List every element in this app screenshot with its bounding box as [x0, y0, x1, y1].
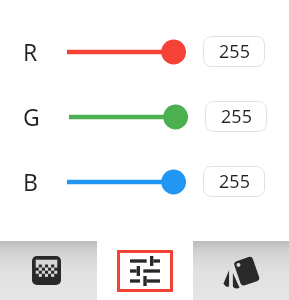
button[interactable]: 255: [203, 166, 265, 197]
button[interactable]: Gradient: [0, 241, 97, 300]
button[interactable]: 255: [203, 36, 265, 67]
staticText: R: [23, 36, 38, 67]
staticText: B: [23, 166, 38, 197]
button[interactable]: Style: [193, 241, 289, 300]
button[interactable]: 255: [205, 101, 267, 132]
staticText: G: [23, 101, 40, 132]
button[interactable]: Tune: [97, 241, 193, 300]
button[interactable]: [67, 39, 186, 65]
staticText: 255: [219, 39, 250, 64]
staticText: 255: [219, 169, 250, 194]
button[interactable]: [67, 169, 186, 195]
staticText: 255: [221, 104, 252, 129]
button[interactable]: [69, 104, 188, 130]
